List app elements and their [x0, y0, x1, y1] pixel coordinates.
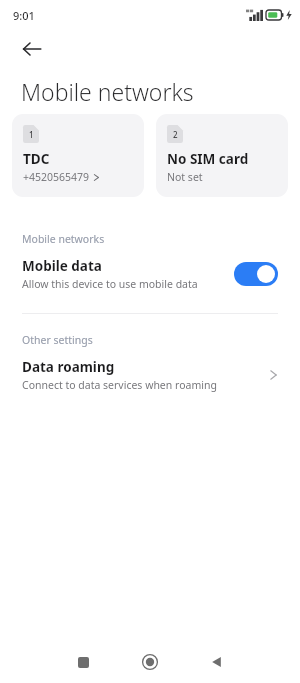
staticText: Data roaming	[22, 358, 115, 376]
staticText: Other settings	[22, 333, 93, 347]
button[interactable]: Data roaming	[0, 352, 300, 398]
staticText: Mobile networks	[21, 76, 194, 107]
staticText: 1	[29, 129, 34, 140]
staticText: +4520565479	[23, 170, 90, 184]
staticText: Allow this device to use mobile data	[22, 277, 198, 291]
staticText: Mobile data	[22, 257, 102, 275]
button[interactable]: 2	[156, 114, 288, 197]
button[interactable]: 1	[12, 114, 144, 197]
staticText: 2	[173, 129, 178, 140]
staticText: Connect to data services when roaming	[22, 378, 217, 392]
staticText: Not set	[167, 170, 203, 184]
button[interactable]: Recents	[61, 641, 105, 683]
button[interactable]: Mobile data toggle	[234, 262, 278, 286]
staticText: 9:01	[13, 8, 35, 23]
button[interactable]: Back	[14, 31, 50, 67]
staticText: Mobile networks	[22, 232, 105, 246]
staticText: No SIM card	[167, 150, 249, 168]
staticText: TDC	[23, 150, 50, 168]
button[interactable]: Back	[195, 641, 239, 683]
button[interactable]: Home	[128, 641, 172, 683]
button[interactable]: Mobile data	[0, 251, 300, 297]
